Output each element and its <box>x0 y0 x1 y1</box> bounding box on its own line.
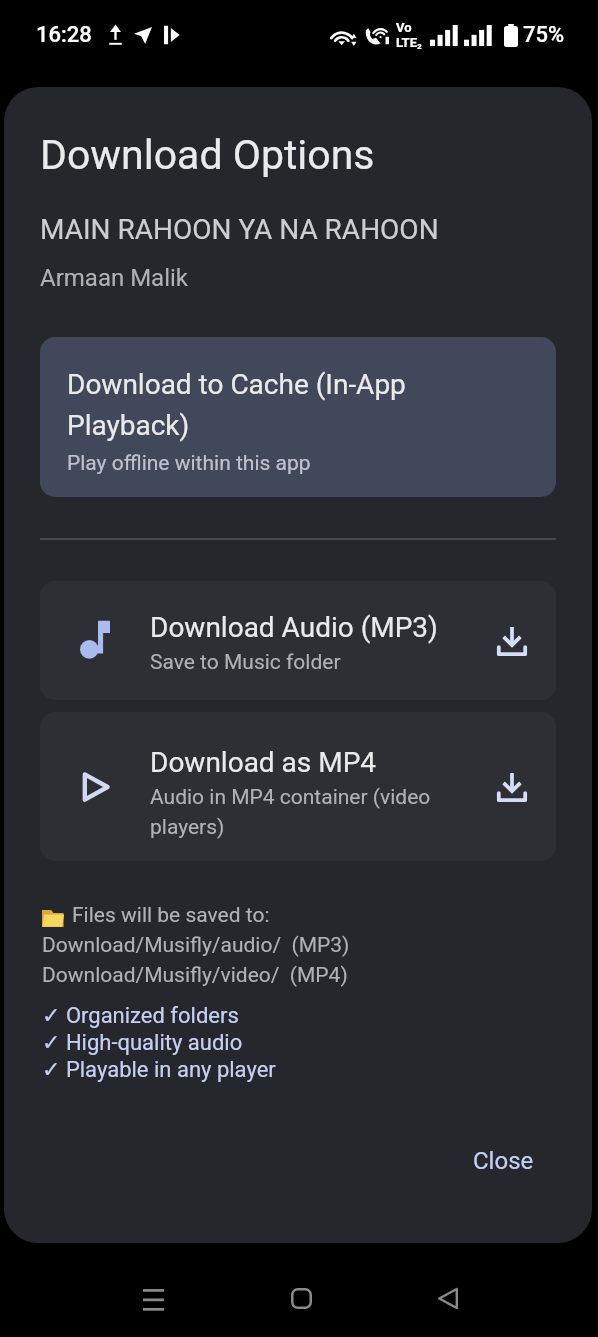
other: Download <box>468 626 556 656</box>
staticText: MAIN RAHOON YA NA RAHOON <box>40 211 439 246</box>
staticText: Save to Music folder <box>150 645 450 675</box>
staticText: Vo <box>396 20 412 35</box>
staticText: Download/Musifly/video/ (MP4) <box>42 958 348 988</box>
button[interactable]: Recents <box>105 1266 201 1331</box>
staticText: ✓ Playable in any player <box>42 1055 276 1082</box>
staticText: Audio in MP4 container (video players) <box>150 780 450 840</box>
button[interactable]: Download as MP4 <box>40 712 556 861</box>
button[interactable]: Home <box>253 1266 349 1331</box>
button[interactable]: Download to Cache (In-App Playback) <box>40 337 556 497</box>
staticText: 16:28 <box>36 22 92 48</box>
staticText: Files will be saved to: <box>72 898 270 928</box>
staticText: Armaan Malik <box>40 262 188 292</box>
staticText: Download Audio (MP3) <box>150 607 438 645</box>
staticText: Close <box>473 1145 534 1175</box>
staticText: ✓ High-quality audio <box>42 1028 243 1055</box>
button[interactable]: Close <box>459 1135 548 1185</box>
other: Download <box>468 772 556 802</box>
staticText: LTE₂ <box>396 35 422 50</box>
staticText: 75% <box>523 22 565 48</box>
button[interactable]: Download Audio (MP3) <box>40 581 556 700</box>
staticText: ✓ Organized folders <box>42 1001 239 1028</box>
staticText: Download/Musifly/audio/ (MP3) <box>42 928 350 958</box>
button[interactable]: Back <box>400 1266 496 1331</box>
staticText: Play offline within this app <box>67 448 311 476</box>
staticText: Download to Cache (In-App Playback) <box>67 362 437 444</box>
staticText: Download Options <box>40 129 375 179</box>
staticText: Download as MP4 <box>150 742 377 780</box>
